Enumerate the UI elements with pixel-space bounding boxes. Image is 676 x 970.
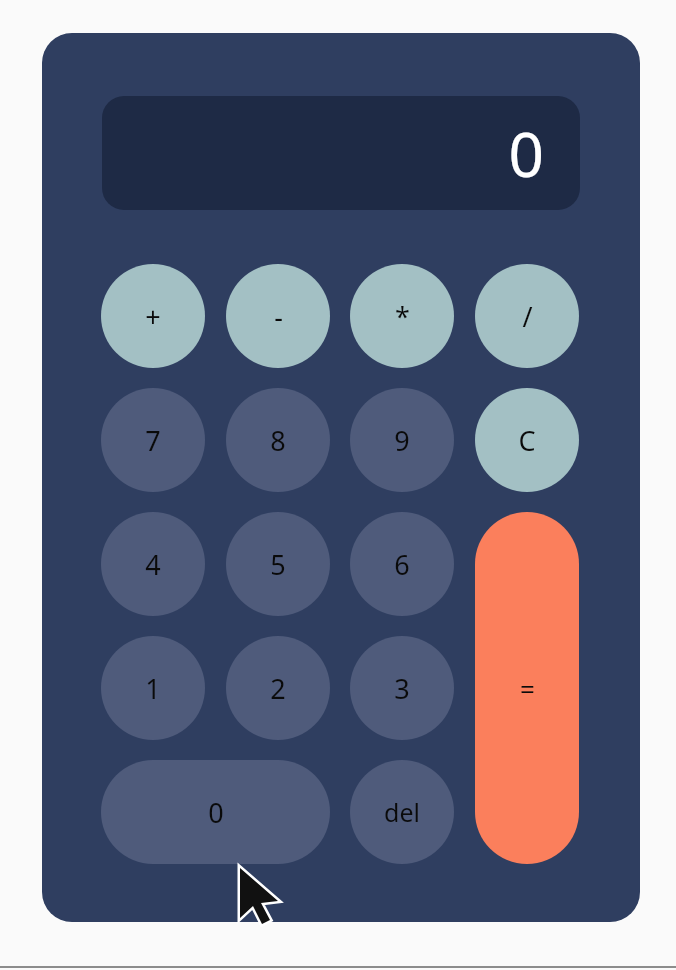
staticText: 8: [270, 422, 286, 459]
button[interactable]: 5: [226, 512, 330, 616]
button[interactable]: 0: [102, 96, 580, 210]
staticText: 0: [508, 111, 544, 195]
other: Pointer: [232, 860, 288, 930]
button[interactable]: =: [475, 512, 579, 864]
button[interactable]: 1: [101, 636, 205, 740]
staticText: *: [395, 298, 410, 335]
button[interactable]: 9: [350, 388, 454, 492]
staticText: 5: [270, 546, 286, 583]
staticText: 7: [145, 422, 161, 459]
button[interactable]: 8: [226, 388, 330, 492]
button[interactable]: 3: [350, 636, 454, 740]
staticText: -: [274, 298, 283, 335]
button[interactable]: 2: [226, 636, 330, 740]
staticText: 3: [394, 670, 410, 707]
button[interactable]: 7: [101, 388, 205, 492]
staticText: C: [518, 422, 536, 459]
button[interactable]: *: [350, 264, 454, 368]
staticText: 6: [394, 546, 410, 583]
staticText: 9: [394, 422, 410, 459]
button[interactable]: -: [226, 264, 330, 368]
staticText: +: [145, 298, 161, 335]
button[interactable]: C: [475, 388, 579, 492]
staticText: 0: [208, 794, 224, 831]
button[interactable]: 6: [350, 512, 454, 616]
button[interactable]: del: [350, 760, 454, 864]
staticText: 2: [270, 670, 286, 707]
button[interactable]: 4: [101, 512, 205, 616]
button[interactable]: +: [101, 264, 205, 368]
staticText: 4: [145, 546, 161, 583]
staticText: del: [384, 795, 420, 829]
staticText: 1: [145, 670, 161, 707]
button[interactable]: 0: [101, 760, 330, 864]
button[interactable]: /: [475, 264, 579, 368]
staticText: /: [522, 298, 533, 335]
staticText: =: [520, 671, 535, 706]
